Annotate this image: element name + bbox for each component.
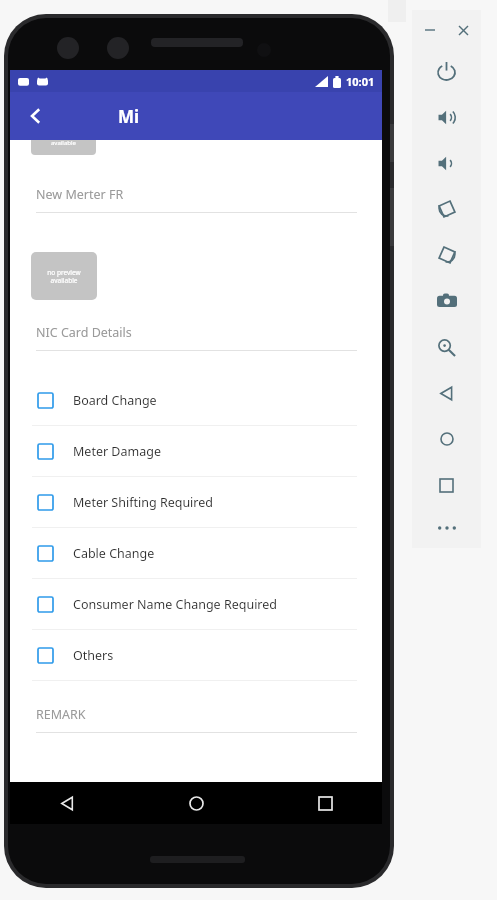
button[interactable]: Board Change: [10, 375, 382, 425]
button[interactable]: Meter Damage: [10, 426, 382, 476]
button[interactable]: Volume up: [412, 94, 481, 140]
button[interactable]: Volume down: [412, 140, 481, 186]
staticText: Board Change: [73, 392, 157, 409]
button[interactable]: Cable Change: [10, 528, 382, 578]
button[interactable]: Recent apps: [308, 786, 342, 820]
button[interactable]: Zoom: [412, 324, 481, 370]
button[interactable]: Minimize: [420, 20, 440, 40]
button[interactable]: Others: [10, 630, 382, 680]
button[interactable]: Rotate right: [412, 232, 481, 278]
button[interactable]: Overview: [412, 462, 481, 508]
staticText: no preview available: [47, 268, 81, 285]
staticText: Cable Change: [73, 545, 155, 562]
staticText: available: [51, 140, 76, 147]
button[interactable]: More: [412, 508, 481, 548]
button[interactable]: Close: [453, 20, 473, 40]
staticText: NIC Card Details: [36, 324, 132, 341]
staticText: Others: [73, 647, 114, 664]
staticText: Consumer Name Change Required: [73, 596, 278, 613]
button[interactable]: Back: [412, 370, 481, 416]
button[interactable]: Rotate left: [412, 186, 481, 232]
staticText: Meter Damage: [73, 443, 161, 460]
button[interactable]: Home: [412, 416, 481, 462]
button[interactable]: Power: [412, 48, 481, 94]
staticText: New Merter FR: [36, 186, 124, 203]
button[interactable]: Back: [50, 786, 84, 820]
button[interactable]: Consumer Name Change Required: [10, 579, 382, 629]
staticText: Mi: [118, 105, 140, 128]
button[interactable]: Home: [179, 786, 213, 820]
button[interactable]: Meter Shifting Required: [10, 477, 382, 527]
button[interactable]: Back: [14, 94, 58, 138]
staticText: Meter Shifting Required: [73, 494, 213, 511]
button[interactable]: Screenshot: [412, 278, 481, 324]
staticText: 10:01: [346, 74, 375, 89]
staticText: REMARK: [36, 706, 86, 723]
